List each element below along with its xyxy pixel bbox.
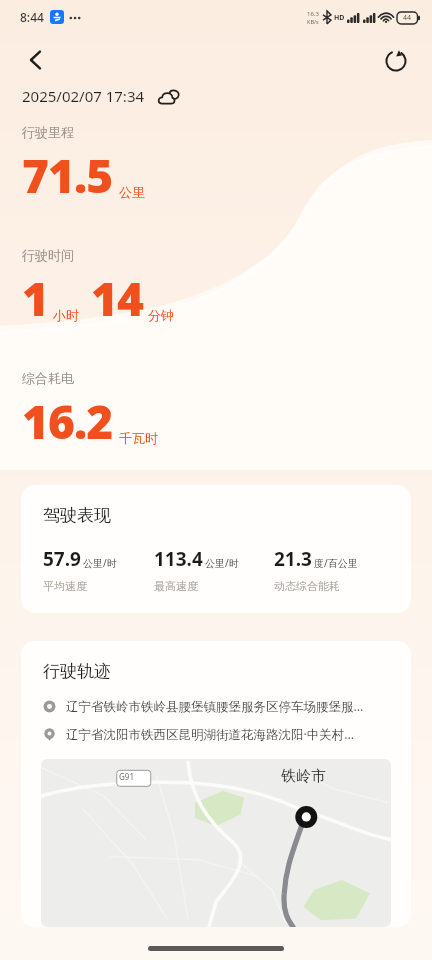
staticText: 行驶时间 bbox=[22, 247, 74, 263]
staticText: 113.4 bbox=[154, 546, 203, 572]
button[interactable]: Refresh bbox=[374, 38, 418, 82]
staticText: 综合耗电 bbox=[22, 370, 74, 386]
staticText: 铁岭市 bbox=[281, 767, 326, 786]
staticText: 16.2 bbox=[22, 390, 113, 453]
staticText: 57.9 bbox=[43, 546, 81, 572]
staticText: 16.3 bbox=[307, 10, 319, 18]
button[interactable]: 驾驶表现 bbox=[21, 485, 411, 613]
staticText: 驾驶表现 bbox=[43, 505, 111, 526]
staticText: 公里/时 bbox=[205, 556, 239, 570]
staticText: KB/s bbox=[307, 18, 319, 25]
staticText: HD bbox=[334, 13, 345, 23]
staticText: 14 bbox=[91, 267, 143, 330]
staticText: 行驶轨迹 bbox=[43, 661, 111, 682]
staticText: 44 bbox=[403, 13, 412, 23]
button[interactable]: 辽宁省铁岭市铁岭县腰堡镇腰堡服务区停车场腰堡服… bbox=[43, 698, 395, 715]
staticText: 辽宁省铁岭市铁岭县腰堡镇腰堡服务区停车场腰堡服… bbox=[66, 698, 364, 715]
staticText: 8:44 bbox=[20, 9, 44, 25]
staticText: 公里 bbox=[119, 184, 145, 200]
staticText: 71.5 bbox=[22, 144, 113, 207]
staticText: 动态综合能耗 bbox=[274, 579, 340, 593]
staticText: 平均速度 bbox=[43, 579, 87, 593]
button[interactable]: Map bbox=[41, 759, 391, 927]
button[interactable]: Back bbox=[14, 38, 58, 82]
staticText: 行驶里程 bbox=[22, 124, 74, 140]
staticText: 公里/时 bbox=[83, 556, 117, 570]
staticText: 千瓦时 bbox=[119, 430, 158, 446]
staticText: 小时 bbox=[53, 307, 79, 323]
staticText: 2025/02/07 17:34 bbox=[22, 86, 145, 106]
staticText: 辽宁省沈阳市铁西区昆明湖街道花海路沈阳·中关村… bbox=[66, 726, 355, 743]
staticText: 度/百公里 bbox=[314, 556, 358, 570]
button[interactable]: 行驶轨迹 bbox=[21, 641, 411, 927]
staticText: 最高速度 bbox=[154, 579, 198, 593]
staticText: G91 bbox=[119, 771, 134, 782]
staticText: 1 bbox=[22, 267, 48, 330]
staticText: 分钟 bbox=[148, 307, 174, 323]
button[interactable]: 辽宁省沈阳市铁西区昆明湖街道花海路沈阳·中关村… bbox=[43, 726, 395, 743]
staticText: 21.3 bbox=[274, 546, 312, 572]
